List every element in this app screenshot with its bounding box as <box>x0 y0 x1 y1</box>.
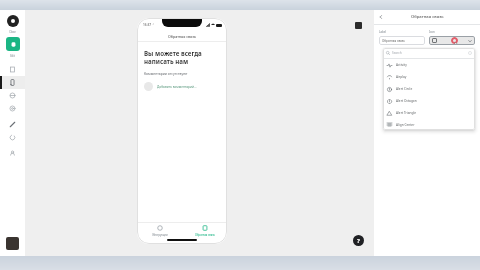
staticText: 16:37 ⌃ <box>143 23 155 27</box>
button[interactable]: Help <box>353 235 364 246</box>
button[interactable]: Select icon <box>429 36 475 45</box>
button[interactable]: Activity <box>387 59 471 71</box>
staticText: Обратная связь <box>411 14 444 20</box>
staticText: Alert Circle <box>396 87 413 91</box>
button[interactable]: Добавить комментарий… <box>144 82 220 91</box>
button[interactable]: Tool 5 <box>0 131 25 144</box>
button[interactable]: Инструкции <box>137 223 182 239</box>
staticText: Label <box>379 30 387 34</box>
button[interactable]: Logo <box>7 15 19 27</box>
staticText: Search <box>392 51 468 55</box>
button[interactable]: Tool 1 <box>0 76 25 89</box>
staticText: Edit <box>10 54 15 58</box>
button[interactable]: Tool 3 <box>0 102 25 115</box>
button[interactable]: Обратная связь <box>182 223 227 239</box>
staticText: ? <box>357 237 360 245</box>
staticText: Activity <box>396 63 407 67</box>
button[interactable]: Tool 4 <box>0 118 25 131</box>
staticText: Вы можете всегда написать нам <box>144 49 220 65</box>
staticText: Комментарии отсутствуют <box>144 71 188 76</box>
staticText: Инструкции <box>152 233 168 237</box>
button[interactable]: Alert Octagon <box>387 95 471 107</box>
staticText: Добавить комментарий… <box>157 85 197 89</box>
staticText: Icon <box>429 30 435 34</box>
button[interactable]: Search <box>386 48 472 58</box>
button[interactable]: Align Center <box>387 119 471 130</box>
staticText: Обратная связь <box>168 34 196 39</box>
staticText: Обратная связь <box>382 39 405 43</box>
button[interactable]: Element <box>355 22 362 29</box>
button[interactable]: Tool 0 <box>0 63 25 76</box>
staticText: Обратная связь <box>195 233 215 237</box>
button[interactable]: App <box>6 37 20 51</box>
button[interactable]: Обратная связь <box>379 36 425 45</box>
staticText: Alert Octagon <box>396 99 417 103</box>
button[interactable]: Airplay <box>387 71 471 83</box>
staticText: Airplay <box>396 75 407 79</box>
staticText: Close <box>9 30 16 34</box>
button[interactable]: Tool 6 <box>0 147 25 160</box>
button[interactable]: Alert Circle <box>387 83 471 95</box>
button[interactable]: Alert Triangle <box>387 107 471 119</box>
staticText: Align Center <box>396 123 415 127</box>
button[interactable]: Tool 2 <box>0 89 25 102</box>
button[interactable]: Preview <box>6 237 19 250</box>
staticText: Alert Triangle <box>396 111 417 115</box>
button[interactable]: Back <box>377 13 385 21</box>
